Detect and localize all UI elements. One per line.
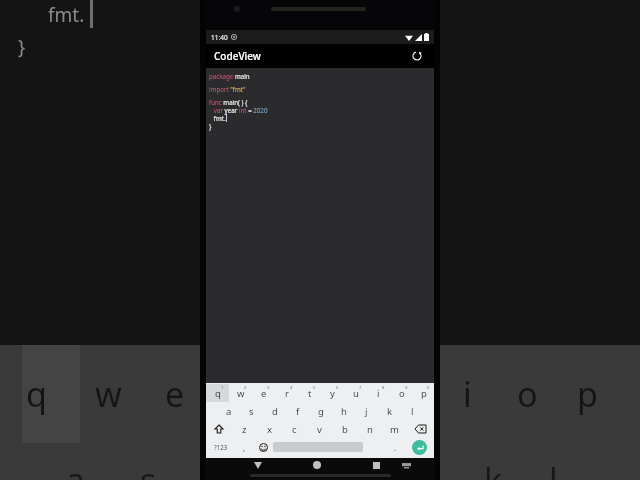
button[interactable]: z (232, 420, 257, 438)
button[interactable]: Space (273, 442, 386, 452)
button[interactable]: package main (206, 68, 434, 383)
button[interactable]: . (386, 438, 404, 456)
button[interactable]: r (275, 384, 298, 402)
staticText: u (353, 387, 359, 400)
staticText: j (365, 405, 368, 418)
button[interactable]: Switch keyboard (399, 458, 413, 472)
staticText: } (18, 34, 26, 60)
button[interactable]: e (252, 384, 275, 402)
staticText: q (26, 371, 47, 417)
staticText: import "fmt" (209, 85, 246, 93)
staticText: n (367, 423, 373, 436)
staticText: 1 (221, 385, 224, 391)
button[interactable]: d (263, 402, 286, 420)
staticText: i (377, 387, 380, 400)
button[interactable]: Back (251, 458, 265, 472)
button[interactable]: n (357, 420, 382, 438)
staticText: f (296, 405, 300, 418)
staticText: func main( ) { (209, 98, 248, 106)
staticText: p (577, 371, 598, 417)
staticText: b (342, 423, 348, 436)
button[interactable]: ?123 (206, 438, 236, 456)
staticText: q (215, 387, 221, 400)
button[interactable]: Backspace (407, 420, 433, 438)
button[interactable]: a (217, 402, 240, 420)
button[interactable]: m (382, 420, 407, 438)
staticText: fmt. (209, 114, 226, 122)
button[interactable]: t (298, 384, 321, 402)
staticText: 6 (336, 385, 339, 391)
staticText: 5 (313, 385, 316, 391)
button[interactable]: x (257, 420, 282, 438)
staticText: , (243, 442, 246, 453)
staticText: l (549, 457, 558, 480)
staticText: 7 (359, 385, 362, 391)
staticText: CodeView (214, 49, 261, 63)
button[interactable]: w (229, 384, 252, 402)
button[interactable]: v (307, 420, 332, 438)
staticText: 4 (290, 385, 293, 391)
staticText: e (261, 387, 267, 400)
staticText: e (165, 371, 185, 417)
staticText: c (292, 423, 297, 436)
staticText: 9 (405, 385, 408, 391)
staticText: s (140, 457, 157, 480)
button[interactable]: Recents (369, 458, 383, 472)
button[interactable]: Shift (206, 420, 232, 438)
staticText: } (209, 122, 212, 130)
staticText: o (399, 387, 405, 400)
staticText: z (242, 423, 247, 436)
staticText: k (387, 405, 393, 418)
staticText: w (95, 371, 122, 417)
staticText: o (517, 371, 538, 417)
staticText: t (308, 387, 312, 400)
staticText: k (484, 457, 503, 480)
staticText: 0 (427, 385, 430, 391)
button[interactable]: i (367, 384, 390, 402)
button[interactable]: Enter (412, 440, 427, 455)
staticText: 2 (244, 385, 247, 391)
button[interactable]: Refresh (408, 47, 426, 65)
staticText: y (330, 387, 335, 400)
staticText: p (421, 387, 427, 400)
button[interactable]: o (390, 384, 413, 402)
staticText: var year int = 2020 (209, 106, 268, 114)
staticText: v (317, 423, 322, 436)
staticText: l (411, 405, 414, 418)
button[interactable]: j (355, 402, 378, 420)
staticText: a (66, 457, 86, 480)
staticText: g (318, 405, 324, 418)
staticText: h (341, 405, 347, 418)
staticText: s (249, 405, 254, 418)
button[interactable]: p (413, 384, 434, 402)
button[interactable]: Emoji (253, 438, 273, 456)
staticText: a (226, 405, 232, 418)
staticText: ?123 (214, 443, 228, 451)
button[interactable]: s (240, 402, 263, 420)
button[interactable]: k (378, 402, 401, 420)
staticText: . (394, 442, 397, 453)
button[interactable]: u (344, 384, 367, 402)
button[interactable]: f (286, 402, 309, 420)
button[interactable]: h (332, 402, 355, 420)
staticText: 11:40 (211, 33, 228, 42)
staticText: m (390, 423, 399, 436)
button[interactable]: g (309, 402, 332, 420)
staticText: fmt. (48, 2, 85, 28)
button[interactable]: Home (310, 458, 324, 472)
staticText: 3 (267, 385, 270, 391)
button[interactable]: c (282, 420, 307, 438)
button[interactable]: b (332, 420, 357, 438)
staticText: w (237, 387, 245, 400)
button[interactable]: y (321, 384, 344, 402)
staticText: package main (209, 72, 250, 80)
button[interactable]: , (236, 438, 253, 456)
staticText: 8 (382, 385, 385, 391)
button[interactable]: l (401, 402, 424, 420)
staticText: d (272, 405, 278, 418)
staticText: r (285, 387, 289, 400)
staticText: x (267, 423, 273, 436)
button[interactable]: q (206, 384, 229, 402)
staticText: i (463, 371, 472, 417)
